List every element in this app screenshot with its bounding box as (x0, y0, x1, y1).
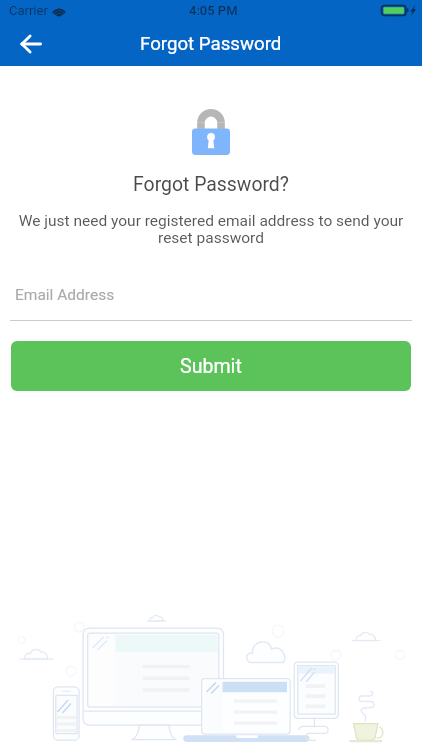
staticText: Email Address (15, 286, 115, 304)
button[interactable]: Email Address (10, 273, 412, 320)
staticText: Submit (180, 355, 242, 378)
staticText: We just need your registered email addre… (16, 212, 406, 247)
staticText: Carrier (9, 3, 48, 18)
staticText: 4:05 PM (189, 3, 238, 18)
staticText: Forgot Password? (0, 173, 422, 196)
staticText: Forgot Password (140, 33, 282, 55)
button[interactable]: Submit (11, 341, 411, 391)
button[interactable]: Back (11, 24, 51, 64)
